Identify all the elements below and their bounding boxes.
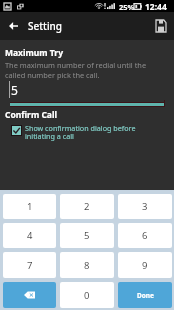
staticText: Show confirmation dialog before initiati… bbox=[25, 123, 136, 141]
button[interactable]: Delete bbox=[3, 282, 56, 308]
staticText: Setting bbox=[28, 19, 63, 33]
button[interactable]: Show confirmation dialog before initiati… bbox=[0, 122, 174, 148]
button[interactable]: 9 bbox=[118, 252, 172, 278]
staticText: The maximum number of redial until the c… bbox=[5, 60, 147, 80]
staticText: 12:44 bbox=[145, 1, 167, 13]
button[interactable]: 3 bbox=[118, 194, 172, 219]
staticText: 7 bbox=[27, 259, 33, 272]
button[interactable]: Save bbox=[148, 12, 174, 40]
button[interactable]: 8 bbox=[60, 252, 114, 278]
staticText: 5 bbox=[11, 82, 18, 98]
button[interactable]: 1 bbox=[3, 194, 56, 219]
staticText: 9 bbox=[142, 259, 148, 272]
staticText: 6 bbox=[142, 229, 148, 242]
staticText: 1 bbox=[27, 200, 33, 213]
button[interactable]: 2 bbox=[60, 194, 114, 219]
button[interactable]: Done bbox=[118, 282, 172, 308]
button[interactable]: 5 bbox=[60, 223, 114, 248]
button[interactable]: 4 bbox=[3, 223, 56, 248]
button[interactable]: 6 bbox=[118, 223, 172, 248]
staticText: Done bbox=[137, 291, 154, 300]
staticText: Confirm Call bbox=[5, 109, 58, 121]
staticText: Maximum Try bbox=[5, 47, 64, 59]
button[interactable]: Navigate up bbox=[0, 12, 27, 40]
staticText: 8 bbox=[84, 259, 90, 272]
button[interactable]: 0 bbox=[60, 282, 114, 308]
staticText: 2 bbox=[84, 200, 90, 213]
staticText: 4 bbox=[27, 229, 33, 242]
button[interactable]: 7 bbox=[3, 252, 56, 278]
staticText: 25% bbox=[119, 2, 135, 12]
staticText: 0 bbox=[84, 289, 90, 302]
staticText: 5 bbox=[84, 229, 90, 242]
staticText: 3 bbox=[142, 200, 148, 213]
